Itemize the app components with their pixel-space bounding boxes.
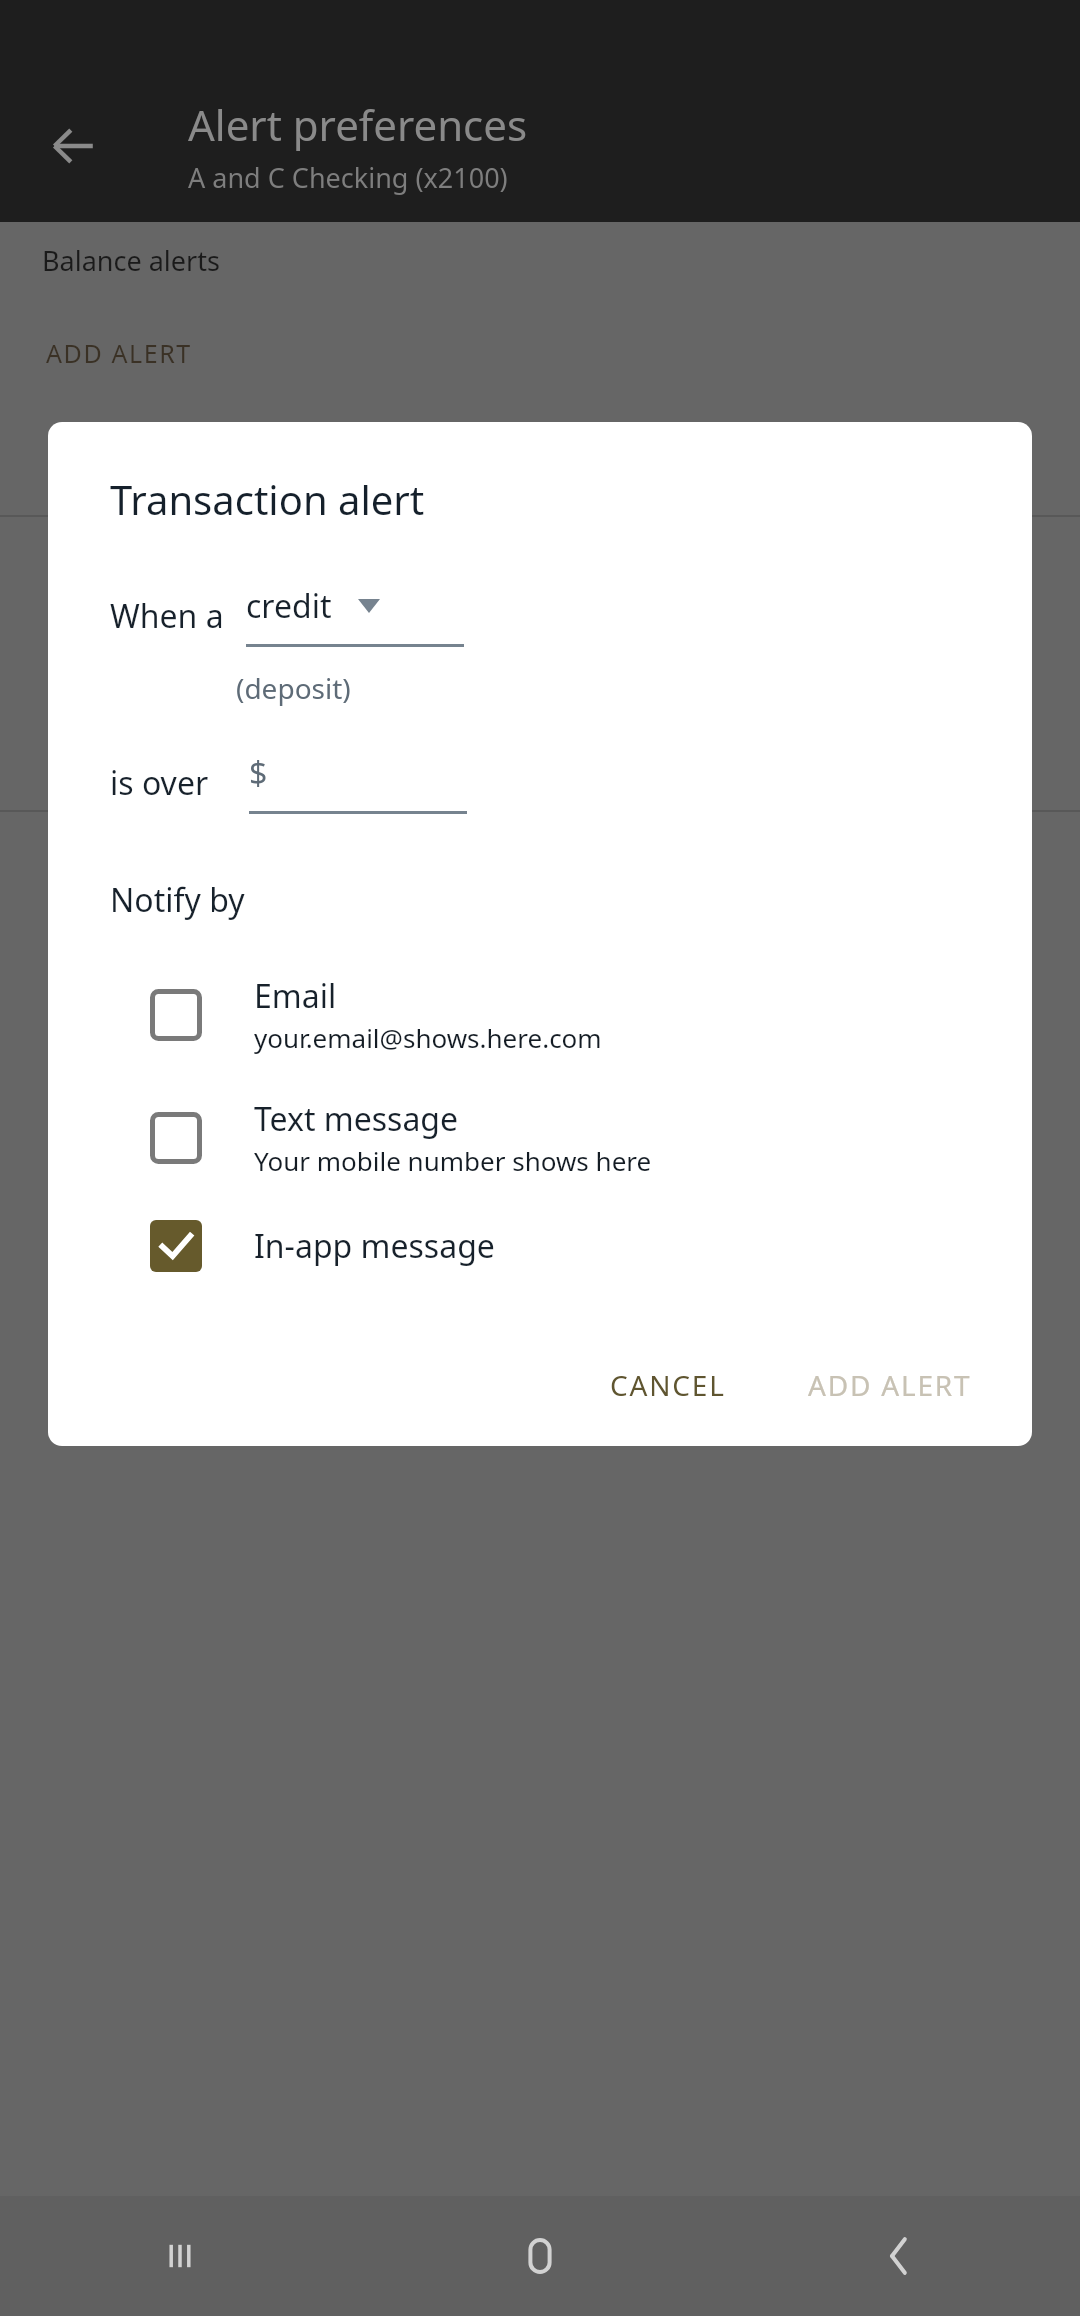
staticText: When a: [110, 594, 224, 638]
staticText: A and C Checking (x2100): [188, 159, 508, 196]
button[interactable]: CANCEL: [586, 1348, 750, 1422]
staticText: Balance alerts: [42, 242, 220, 279]
staticText: Notify by: [110, 878, 245, 922]
button[interactable]: Recent apps: [0, 2196, 360, 2316]
button[interactable]: ADD ALERT: [0, 305, 1080, 401]
staticText: Text message: [254, 1097, 459, 1141]
staticText: ADD ALERT: [46, 336, 192, 370]
staticText: $: [249, 751, 268, 795]
button[interactable]: ADD ALERT: [784, 1348, 996, 1422]
staticText: Transaction alert: [110, 472, 425, 526]
staticText: is over: [110, 761, 209, 805]
staticText: Alert preferences: [188, 96, 528, 153]
button[interactable]: $: [249, 751, 467, 814]
button[interactable]: Text message: [48, 1097, 1032, 1178]
staticText: In-app message: [254, 1224, 495, 1268]
other: Open dropdown: [358, 599, 380, 613]
button[interactable]: Back: [720, 2196, 1080, 2316]
staticText: Your mobile number shows here: [254, 1143, 652, 1178]
button[interactable]: In-app message: [48, 1220, 1032, 1272]
button[interactable]: Back: [30, 103, 116, 189]
staticText: (deposit): [236, 669, 351, 707]
staticText: CANCEL: [610, 1366, 726, 1404]
button[interactable]: Home: [360, 2196, 720, 2316]
staticText: ADD ALERT: [808, 1366, 972, 1404]
staticText: your.email@shows.here.com: [254, 1020, 602, 1055]
staticText: Email: [254, 974, 337, 1018]
staticText: credit: [246, 584, 332, 628]
button[interactable]: Email: [48, 974, 1032, 1055]
button[interactable]: credit: [246, 584, 464, 647]
